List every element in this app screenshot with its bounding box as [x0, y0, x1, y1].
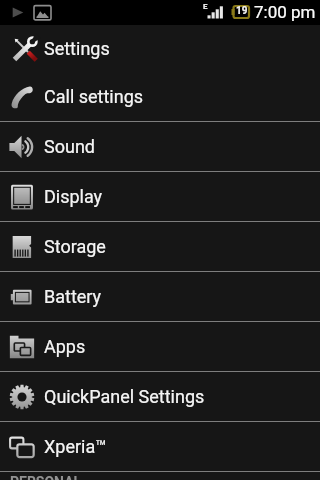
staticText: Battery: [44, 286, 102, 307]
button[interactable]: Storage: [0, 222, 320, 271]
staticText: E: [203, 2, 208, 11]
staticText: Apps: [44, 336, 86, 357]
button[interactable]: Battery: [0, 272, 320, 321]
staticText: PERSONAL: [10, 474, 82, 480]
staticText: QuickPanel Settings: [44, 386, 205, 407]
staticText: Display: [44, 186, 103, 207]
staticText: Storage: [44, 236, 106, 257]
button[interactable]: Xperia™: [0, 422, 320, 471]
button[interactable]: Display: [0, 172, 320, 221]
button[interactable]: Settings: [0, 25, 320, 71]
button[interactable]: Call settings: [0, 72, 320, 121]
button[interactable]: Apps: [0, 322, 320, 371]
button[interactable]: Sound: [0, 122, 320, 171]
staticText: Call settings: [44, 86, 144, 107]
staticText: 19: [236, 5, 248, 17]
staticText: Settings: [44, 38, 110, 59]
staticText: 7:00 pm: [254, 2, 316, 22]
staticText: Xperia™: [44, 436, 107, 457]
staticText: Sound: [44, 136, 95, 157]
button[interactable]: QuickPanel Settings: [0, 372, 320, 421]
